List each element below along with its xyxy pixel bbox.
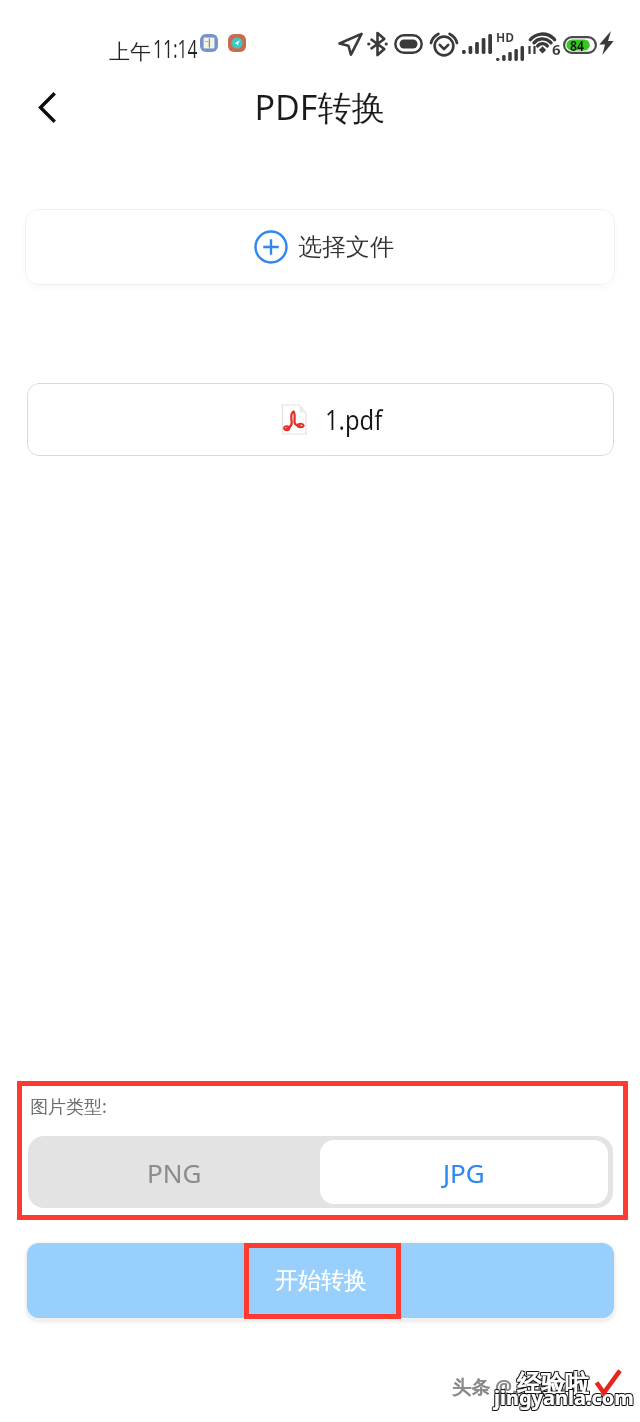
staticText: 84 [570,35,585,55]
staticText: jingyanla.com [495,1385,635,1412]
staticText: 经验啦 [516,1368,588,1398]
staticText: 经验啦 [518,1369,590,1399]
staticText: jingyanla.com [495,1383,635,1410]
button[interactable]: JPG [320,1140,608,1204]
button[interactable]: 开始转换 [27,1243,614,1318]
staticText: jingyanla.com [493,1385,633,1412]
staticText: 开始转换 [275,1266,367,1295]
staticText: 经验啦 [516,1370,588,1400]
staticText: 经验啦 [518,1370,590,1400]
button[interactable]: 选择文件 [25,209,615,285]
staticText: jingyanla.com [494,1384,634,1411]
staticText: jingyanla.com [493,1383,633,1410]
staticText: 经验啦 [518,1368,590,1398]
staticText: HD [496,29,514,45]
staticText: jingyanla.com [493,1384,633,1411]
staticText: 上午 [109,39,151,65]
staticText: 图片类型: [30,1094,107,1119]
staticText: PNG [147,1155,202,1190]
button[interactable]: 1.pdf [27,383,614,456]
button[interactable]: PNG [28,1136,320,1208]
staticText: JPG [443,1155,485,1190]
staticText: 经验啦 [516,1369,588,1399]
staticText: 1.pdf [325,401,383,438]
button[interactable]: Back [24,84,70,130]
staticText: 经验啦 [517,1368,589,1398]
staticText: 6 [552,39,561,59]
staticText: jingyanla.com [494,1383,634,1410]
staticText: 经验啦 [517,1369,589,1399]
staticText: PDF转换 [254,84,386,130]
staticText: 11:14 [153,30,198,65]
staticText: 经验啦 [517,1370,589,1400]
staticText: jingyanla.com [494,1385,634,1412]
staticText: 头条 @...转换器 [452,1374,586,1400]
staticText: jingyanla.com [495,1384,635,1411]
staticText: 选择文件 [298,232,394,262]
